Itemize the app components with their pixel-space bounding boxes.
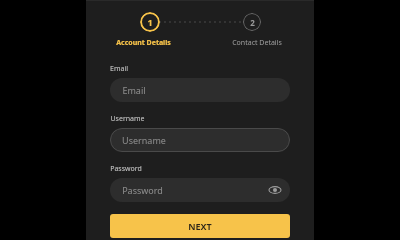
staticText: 2 — [250, 17, 255, 28]
staticText: Email — [122, 84, 146, 96]
button[interactable]: Username — [110, 128, 290, 152]
button[interactable]: Password — [110, 178, 290, 202]
staticText: Password — [110, 164, 142, 174]
staticText: Contact Details — [232, 38, 282, 48]
button[interactable]: Show password — [268, 183, 282, 197]
staticText: Username — [110, 114, 145, 124]
staticText: NEXT — [188, 220, 212, 232]
staticText: Account Details — [116, 38, 171, 48]
staticText: Password — [122, 184, 163, 196]
staticText: Username — [122, 134, 166, 146]
button[interactable]: Email — [110, 78, 290, 102]
button[interactable]: 2 — [243, 13, 261, 31]
button[interactable]: NEXT — [110, 214, 290, 238]
staticText: 1 — [147, 16, 153, 28]
button[interactable]: 1 — [140, 12, 160, 32]
staticText: Email — [110, 64, 128, 74]
